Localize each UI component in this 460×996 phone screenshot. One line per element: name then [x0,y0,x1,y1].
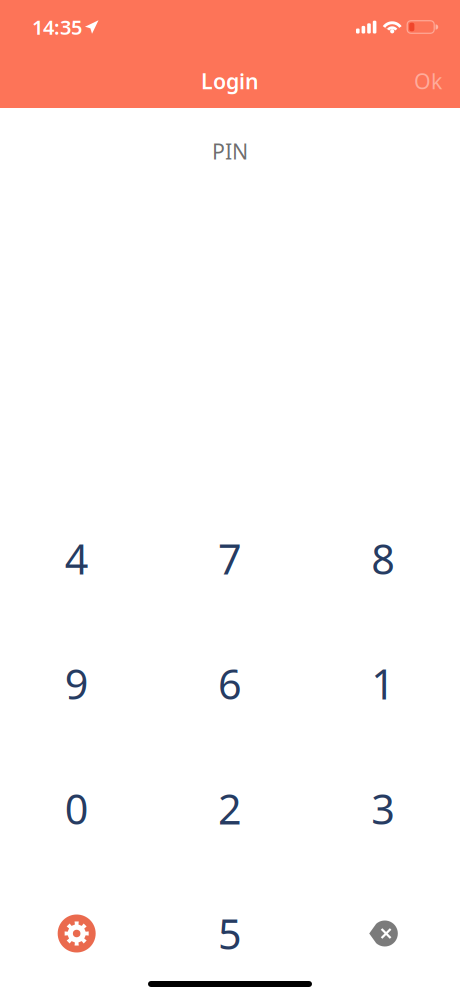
button[interactable]: 1 [307,621,460,746]
button[interactable]: 0 [0,746,153,871]
button[interactable]: Settings [0,871,153,995]
button[interactable]: 2 [153,746,307,871]
button[interactable]: 6 [153,621,307,746]
staticText: 8 [371,531,395,586]
button[interactable]: 5 [153,871,307,996]
staticText: PIN [212,137,248,165]
staticText: 9 [65,656,89,711]
staticText: Ok [414,67,442,95]
button[interactable]: 9 [0,621,153,746]
button[interactable]: 7 [153,496,307,621]
button[interactable]: Delete [307,871,460,995]
staticText: 4 [65,531,89,586]
staticText: Login [201,67,259,95]
staticText: 1 [371,656,395,711]
staticText: 2 [218,781,242,836]
staticText: 3 [371,781,395,836]
button[interactable]: 3 [307,746,460,871]
button[interactable]: 4 [0,496,153,621]
staticText: 6 [218,656,242,711]
staticText: 14:35 [32,14,82,40]
staticText: 7 [218,531,242,586]
staticText: 5 [218,906,242,961]
button[interactable]: Ok [396,54,460,108]
button[interactable]: 8 [307,496,460,621]
staticText: 0 [65,781,89,836]
